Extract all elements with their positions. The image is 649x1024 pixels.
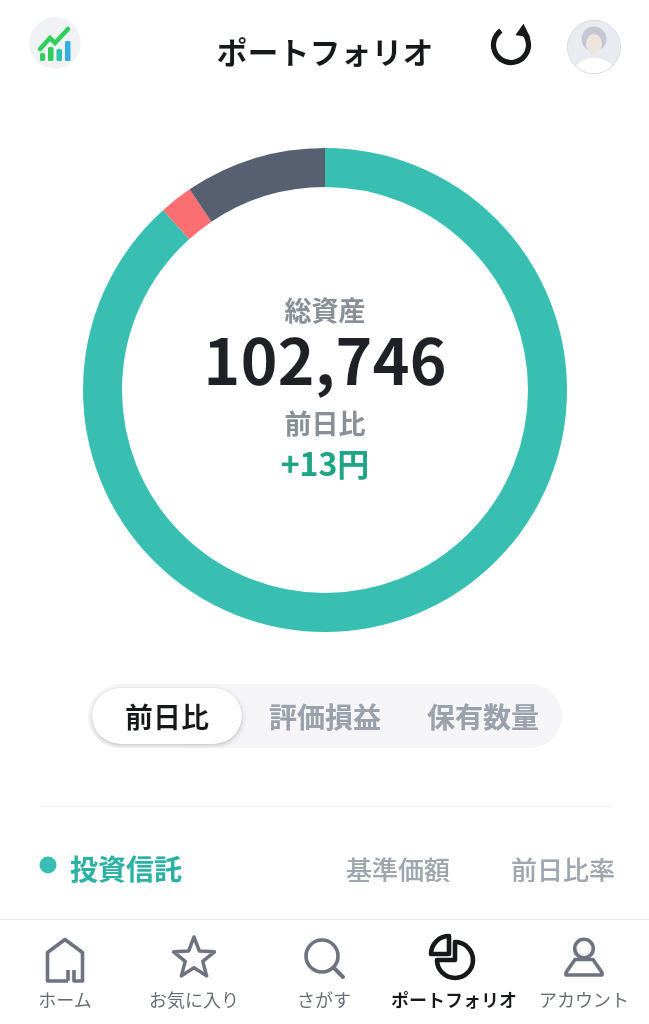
button[interactable] [489, 22, 533, 66]
staticText: 前日比 [125, 696, 210, 737]
staticText: 投資信託 [70, 848, 183, 884]
staticText: さがす [249, 986, 399, 1012]
button[interactable]: 基準価額 [0, 0, 116, 32]
button[interactable]: お気に入り [129, 920, 259, 1024]
staticText: ホーム [0, 986, 140, 1012]
button[interactable]: ポートフォリオ [389, 920, 519, 1024]
staticText: ポートフォリオ [379, 986, 529, 1012]
button[interactable]: さがす [259, 920, 389, 1024]
button[interactable] [29, 17, 81, 69]
button[interactable]: 前日比率 [0, 0, 116, 32]
staticText: お気に入り [119, 986, 269, 1012]
staticText: 保有数量 [427, 696, 540, 737]
button[interactable]: 投資信託 [70, 848, 200, 884]
staticText: 前日比 [0, 403, 649, 442]
button[interactable]: 保有数量 [404, 684, 562, 748]
staticText: 基準価額 [68, 850, 649, 882]
staticText: ポートフォリオ [0, 28, 649, 73]
staticText: +13円 [0, 439, 649, 485]
staticText: アカウント [509, 986, 649, 1012]
button[interactable] [567, 20, 621, 74]
button[interactable]: アカウント [519, 920, 649, 1024]
staticText: 前日比率 [233, 850, 649, 882]
staticText: 総資産 [0, 290, 649, 329]
button[interactable]: ホーム [0, 920, 129, 1024]
staticText: 評価損益 [269, 696, 382, 737]
button[interactable]: 評価損益 [246, 684, 404, 748]
button[interactable]: 前日比 [92, 688, 242, 744]
staticText: 102,746 [0, 312, 649, 403]
